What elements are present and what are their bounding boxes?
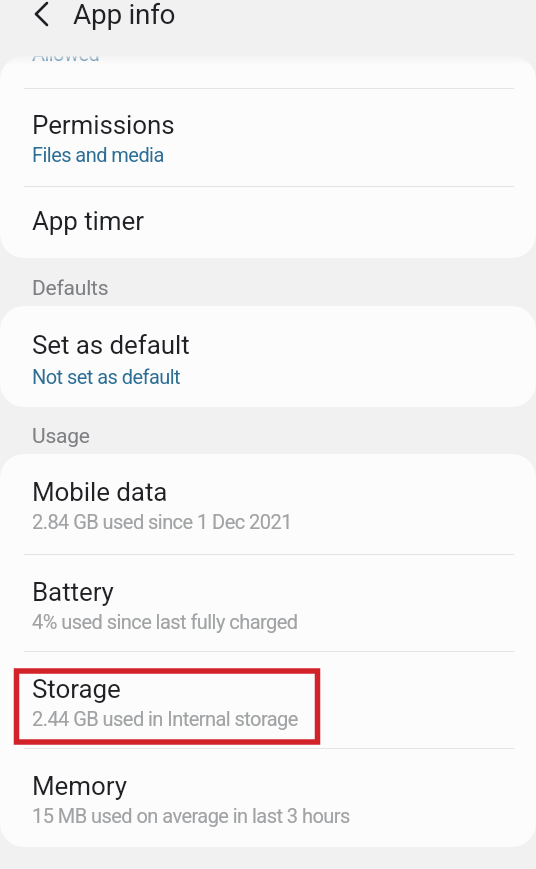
staticText: Defaults (32, 276, 109, 301)
staticText: Storage (32, 674, 121, 704)
button[interactable]: Permissions (0, 89, 536, 186)
button[interactable]: Storage (0, 652, 536, 749)
button[interactable]: Allowed (0, 56, 536, 88)
button[interactable]: Mobile data (0, 454, 536, 554)
staticText: Not set as default (32, 365, 181, 388)
staticText: Allowed (32, 56, 100, 65)
staticText: Files and media (32, 143, 164, 166)
staticText: Mobile data (32, 477, 168, 507)
staticText: Usage (32, 424, 90, 449)
button[interactable]: Back (24, 0, 60, 40)
button[interactable]: App timer (0, 187, 536, 258)
staticText: App info (73, 0, 176, 31)
staticText: App timer (32, 206, 144, 236)
staticText: Set as default (32, 330, 190, 360)
button[interactable]: Set as default (0, 306, 536, 407)
staticText: Memory (32, 771, 127, 801)
staticText: 2.84 GB used since 1 Dec 2021 (32, 510, 292, 533)
staticText: Permissions (32, 110, 175, 140)
staticText: 4% used since last fully charged (32, 610, 298, 633)
button[interactable]: Battery (0, 555, 536, 652)
staticText: Battery (32, 577, 114, 607)
staticText: 15 MB used on average in last 3 hours (32, 804, 350, 827)
staticText: 2.44 GB used in Internal storage (32, 707, 298, 730)
button[interactable]: Memory (0, 749, 536, 847)
